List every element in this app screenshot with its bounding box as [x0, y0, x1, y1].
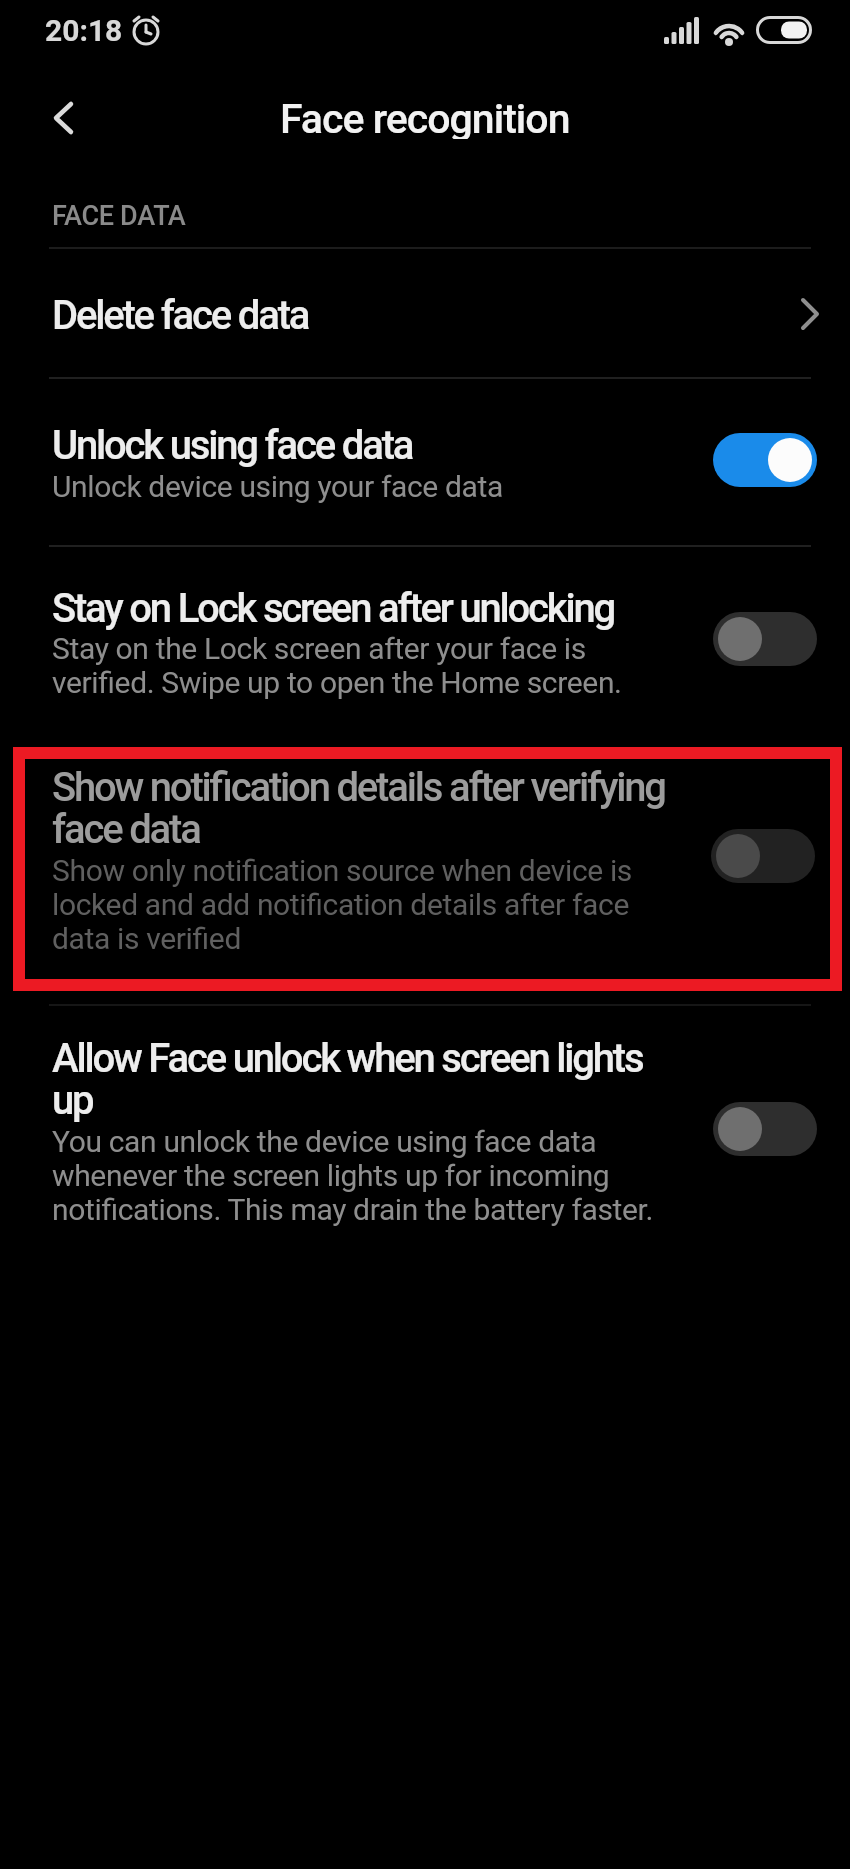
staticText: Allow Face unlock when screen lights up — [52, 1035, 643, 1124]
button[interactable]: Unlock using face data — [0, 379, 850, 545]
staticText: Unlock device using your face data — [52, 469, 503, 504]
button[interactable] — [713, 433, 817, 487]
button[interactable]: Stay on Lock screen after unlocking — [0, 547, 850, 725]
button[interactable]: Show notification details after verifyin… — [0, 747, 850, 991]
button[interactable] — [713, 1102, 817, 1156]
staticText: Unlock using face data — [52, 422, 413, 469]
staticText: Stay on the Lock screen after your face … — [52, 631, 622, 700]
button[interactable] — [711, 829, 815, 883]
button[interactable] — [28, 88, 100, 148]
staticText: Show only notification source when devic… — [52, 853, 632, 956]
staticText: Stay on Lock screen after unlocking — [52, 585, 615, 632]
staticText: You can unlock the device using face dat… — [52, 1124, 654, 1227]
staticText: Face recognition — [280, 95, 570, 139]
staticText: 20:18 — [45, 13, 123, 48]
staticText: Show notification details after verifyin… — [52, 764, 665, 853]
button[interactable] — [713, 612, 817, 666]
button[interactable]: Allow Face unlock when screen lights up — [0, 1014, 850, 1244]
staticText: FACE DATA — [52, 200, 186, 232]
button[interactable]: Delete face data — [0, 249, 850, 377]
staticText: Delete face data — [52, 292, 309, 339]
